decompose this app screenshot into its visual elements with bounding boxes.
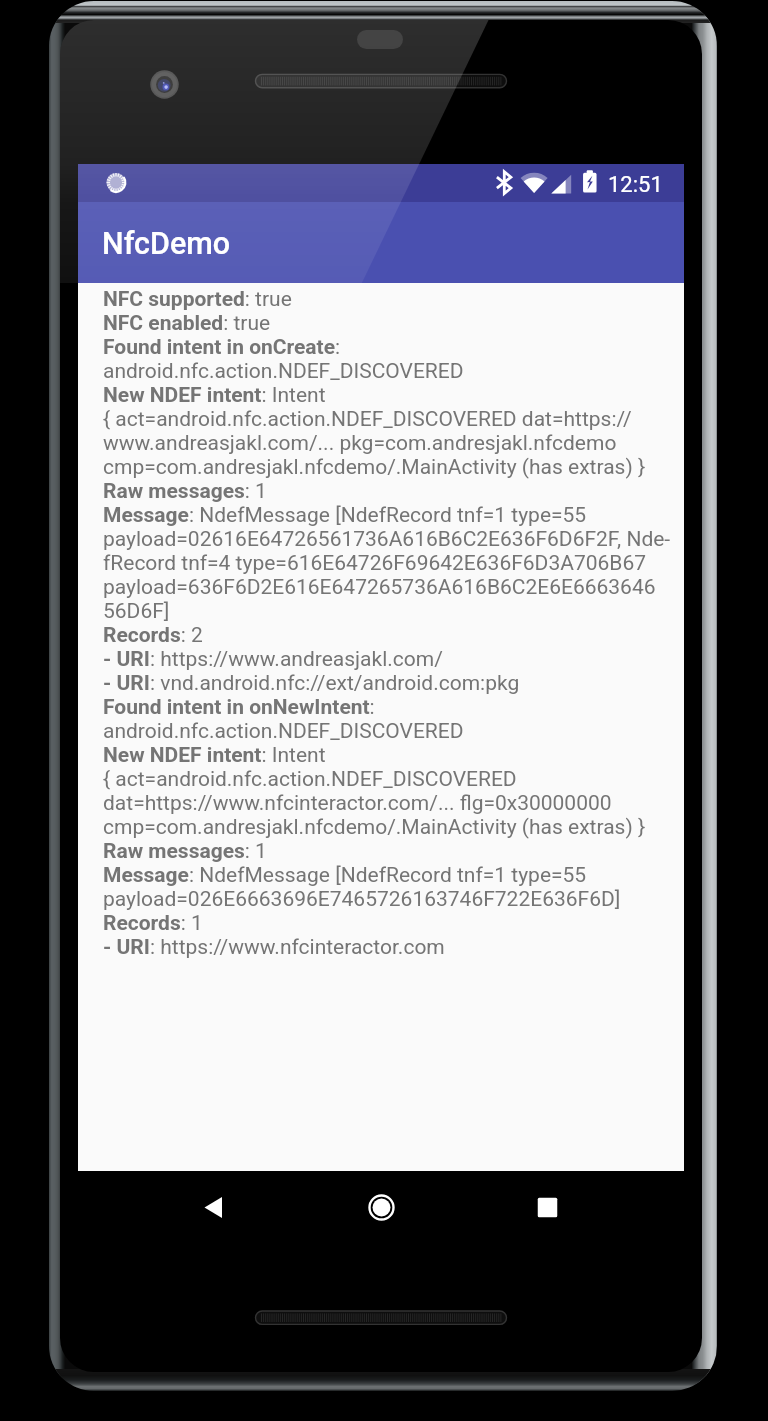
- staticText: 12:51: [608, 172, 663, 198]
- button[interactable]: Recent apps: [517, 1177, 578, 1238]
- staticText: NFC supported: true NFC enabled: true Fo…: [103, 287, 671, 959]
- staticText: NfcDemo: [102, 226, 231, 262]
- button[interactable]: Home: [351, 1177, 412, 1238]
- button[interactable]: NfcDemo: [78, 202, 684, 283]
- button[interactable]: Back: [183, 1177, 244, 1238]
